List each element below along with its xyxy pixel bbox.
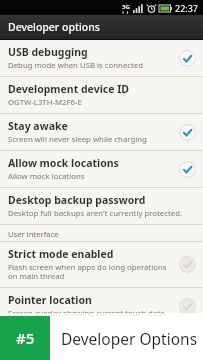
button[interactable]: Pointer location (0, 288, 203, 325)
staticText: Screen overlay showing current touch dat… (8, 308, 165, 319)
staticText: Strict mode enabled (8, 247, 114, 261)
button[interactable]: Stay awake (0, 114, 203, 151)
staticText: 22:37 (175, 2, 199, 14)
staticText: Pointer location (8, 293, 92, 307)
button[interactable]: Show touches (0, 325, 203, 360)
staticText: User interface (8, 229, 59, 239)
staticText: Desktop full backups aren't currently pr… (8, 208, 183, 219)
button[interactable]: Checked (179, 50, 196, 67)
staticText: Show touches (8, 330, 81, 344)
staticText: #5 (16, 328, 35, 348)
staticText: Stay awake (8, 119, 68, 133)
staticText: Screen will never sleep while charging (8, 134, 147, 145)
staticText: Flash screen when apps do long operation… (8, 262, 173, 282)
button[interactable]: Development device ID (0, 77, 203, 114)
button[interactable]: Desktop backup password (0, 188, 203, 225)
button[interactable]: Checked (179, 124, 196, 141)
button[interactable]: Unchecked (179, 298, 196, 315)
button[interactable]: Strict mode enabled (0, 242, 203, 288)
staticText: Allow mock locations (8, 171, 85, 182)
button[interactable]: USB debugging (0, 40, 203, 77)
staticText: Show visual feedback for touches (8, 345, 130, 355)
staticText: Debug mode when USB is connected (8, 60, 144, 71)
staticText: Allow mock locations (8, 156, 119, 170)
button[interactable]: Allow mock locations (0, 151, 203, 188)
staticText: 3G (122, 3, 130, 11)
staticText: Developer options (8, 20, 100, 34)
staticText: Development device ID (8, 82, 129, 96)
button[interactable]: Unchecked (179, 256, 196, 273)
staticText: Developer Options (61, 328, 198, 349)
button[interactable]: Unchecked (179, 334, 196, 351)
staticText: USB debugging (8, 45, 88, 59)
staticText: OGTW-L3TH-M2F6-E (8, 97, 82, 108)
button[interactable]: Checked (179, 161, 196, 178)
staticText: Desktop backup password (8, 193, 146, 207)
